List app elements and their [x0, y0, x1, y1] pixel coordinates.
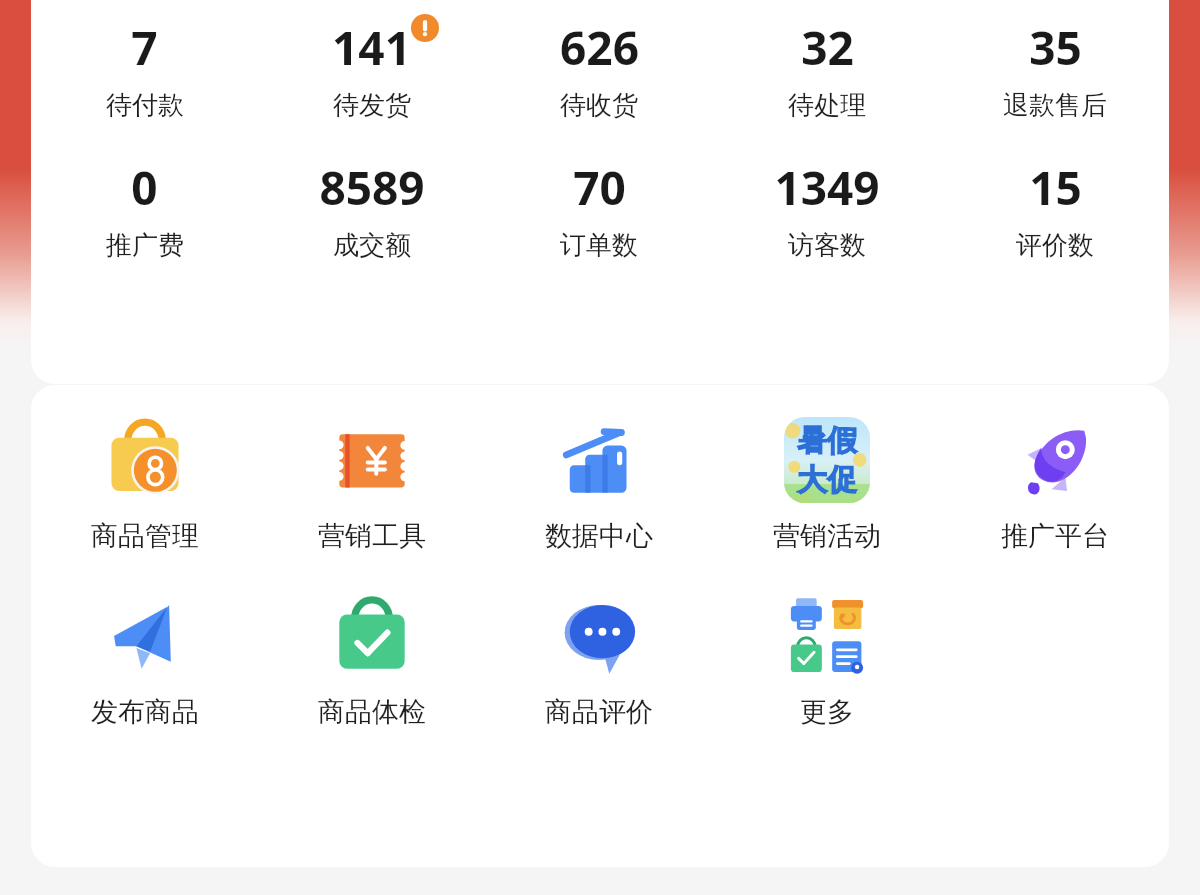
staticText: 访客数 — [788, 229, 866, 262]
staticText: 商品评价 — [545, 695, 653, 729]
staticText: 推广平台 — [1001, 519, 1109, 553]
staticText: 626 — [560, 16, 639, 79]
staticText: 35 — [1029, 16, 1082, 79]
button[interactable]: 8589 — [258, 156, 485, 262]
button[interactable]: 发布商品 — [31, 593, 258, 729]
staticText: 8589 — [319, 156, 425, 219]
staticText: 营销工具 — [318, 519, 426, 553]
button[interactable]: 1349 — [713, 156, 941, 262]
staticText: 15 — [1029, 156, 1082, 219]
button[interactable]: 7 — [31, 16, 258, 122]
staticText: 商品管理 — [91, 519, 199, 553]
button[interactable]: 35 — [941, 16, 1169, 122]
button[interactable]: 营销工具 — [258, 417, 485, 553]
staticText: 70 — [573, 156, 626, 219]
staticText: 待收货 — [560, 89, 638, 122]
staticText: 待处理 — [788, 89, 866, 122]
button[interactable]: 0 — [31, 156, 258, 262]
button[interactable]: 商品评价 — [485, 593, 713, 729]
staticText: 数据中心 — [545, 519, 653, 553]
staticText: 订单数 — [560, 229, 638, 262]
staticText: 暑假 — [797, 422, 857, 460]
staticText: 发布商品 — [91, 695, 199, 729]
staticText: 更多 — [800, 695, 854, 729]
staticText: 大促 — [797, 461, 857, 499]
staticText: 1349 — [774, 156, 880, 219]
staticText: 退款售后 — [1003, 89, 1107, 122]
button[interactable]: 626 — [485, 16, 713, 122]
button[interactable]: 32 — [713, 16, 941, 122]
button[interactable]: 推广平台 — [941, 417, 1169, 553]
button[interactable]: 商品体检 — [258, 593, 485, 729]
staticText: 营销活动 — [773, 519, 881, 553]
staticText: 7 — [131, 16, 158, 79]
button[interactable]: 15 — [941, 156, 1169, 262]
staticText: 成交额 — [333, 229, 411, 262]
staticText: 待发货 — [333, 89, 411, 122]
button[interactable]: 70 — [485, 156, 713, 262]
staticText: 商品体检 — [318, 695, 426, 729]
staticText: 0 — [131, 156, 158, 219]
staticText: 评价数 — [1016, 229, 1094, 262]
staticText: 待付款 — [106, 89, 184, 122]
staticText: 141 — [332, 16, 411, 79]
button[interactable]: 商品管理 — [31, 417, 258, 553]
button[interactable]: 数据中心 — [485, 417, 713, 553]
button[interactable]: 141 — [258, 16, 485, 122]
button[interactable]: 更多 — [713, 593, 941, 729]
staticText: 推广费 — [106, 229, 184, 262]
button[interactable]: 暑假 — [713, 417, 941, 553]
staticText: 32 — [801, 16, 854, 79]
